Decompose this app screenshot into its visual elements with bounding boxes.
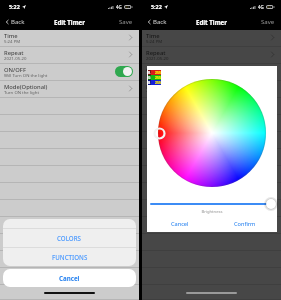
staticText: Time [4, 32, 18, 40]
staticText: 4G [258, 4, 264, 10]
staticText: 2021-05-20 [4, 55, 27, 61]
staticText: Edit Timer [196, 18, 227, 26]
staticText: Brightness [147, 209, 277, 215]
button[interactable]: Repeat [142, 47, 281, 64]
button[interactable]: Back [4, 13, 25, 30]
staticText: ON/OFF [4, 66, 26, 74]
staticText: 4G [116, 4, 122, 10]
staticText: Time [146, 32, 160, 40]
staticText: Mode(Optional) [4, 83, 48, 91]
button[interactable]: FUNCTIONS [3, 248, 136, 266]
button[interactable]: Confirm [212, 216, 277, 232]
staticText: 5:22 [151, 3, 162, 10]
staticText: 5:22 [151, 3, 162, 10]
staticText: Repeat [146, 49, 166, 57]
button[interactable]: Repeat [0, 47, 139, 64]
button[interactable]: Time [0, 30, 139, 47]
staticText: Back [153, 18, 167, 26]
button[interactable]: Mode(Optional) [0, 81, 139, 98]
staticText: 255 [155, 75, 161, 80]
staticText: Save [119, 18, 133, 26]
staticText: Confirm [234, 220, 256, 228]
staticText: B [148, 80, 151, 85]
button[interactable]: ON/OFF [0, 64, 139, 81]
staticText: Back [11, 18, 25, 26]
staticText: Cancel [171, 220, 189, 228]
button[interactable]: Toggle light on or off [115, 66, 133, 77]
staticText: 5:22 [9, 3, 20, 10]
staticText: Mode(Optional) [146, 83, 190, 91]
staticText: Will Turn ON the light [4, 72, 48, 78]
staticText: R [148, 70, 151, 75]
staticText: ON/OFF [146, 66, 168, 74]
staticText: 5:24 PM [4, 38, 21, 44]
staticText: Edit Timer [196, 18, 227, 26]
staticText: FUNCTIONS [52, 253, 88, 261]
button[interactable]: Save [261, 13, 275, 30]
other: Brightness slider [264, 197, 278, 211]
button[interactable]: Save [119, 13, 133, 30]
button[interactable]: Cancel [3, 269, 136, 287]
staticText: Save [261, 18, 275, 26]
button[interactable]: ON/OFF [142, 64, 281, 81]
button[interactable]: Back [146, 13, 167, 30]
staticText: G [148, 75, 151, 80]
staticText: 4G [258, 4, 264, 10]
staticText: Turn ON the light [4, 89, 39, 95]
staticText: 255 [155, 80, 161, 85]
button[interactable]: Mode(Optional) [142, 81, 281, 98]
button[interactable]: COLORS [3, 229, 136, 247]
staticText: COLORS [57, 234, 82, 242]
staticText: Cancel [59, 274, 80, 282]
staticText: Will Turn ON the light [146, 72, 190, 78]
button[interactable]: Back [146, 13, 167, 30]
staticText: 5:24 PM [146, 38, 163, 44]
staticText: Repeat [4, 49, 24, 57]
staticText: 255 [155, 70, 161, 75]
staticText: Edit Timer [54, 18, 85, 26]
staticText: 2021-05-20 [146, 55, 169, 61]
staticText: Back [153, 18, 167, 26]
staticText: Turn ON the light [146, 89, 181, 95]
button[interactable]: Save [261, 13, 275, 30]
staticText: Save [261, 18, 275, 26]
button[interactable]: Cancel [147, 216, 212, 232]
button[interactable]: Time [142, 30, 281, 47]
